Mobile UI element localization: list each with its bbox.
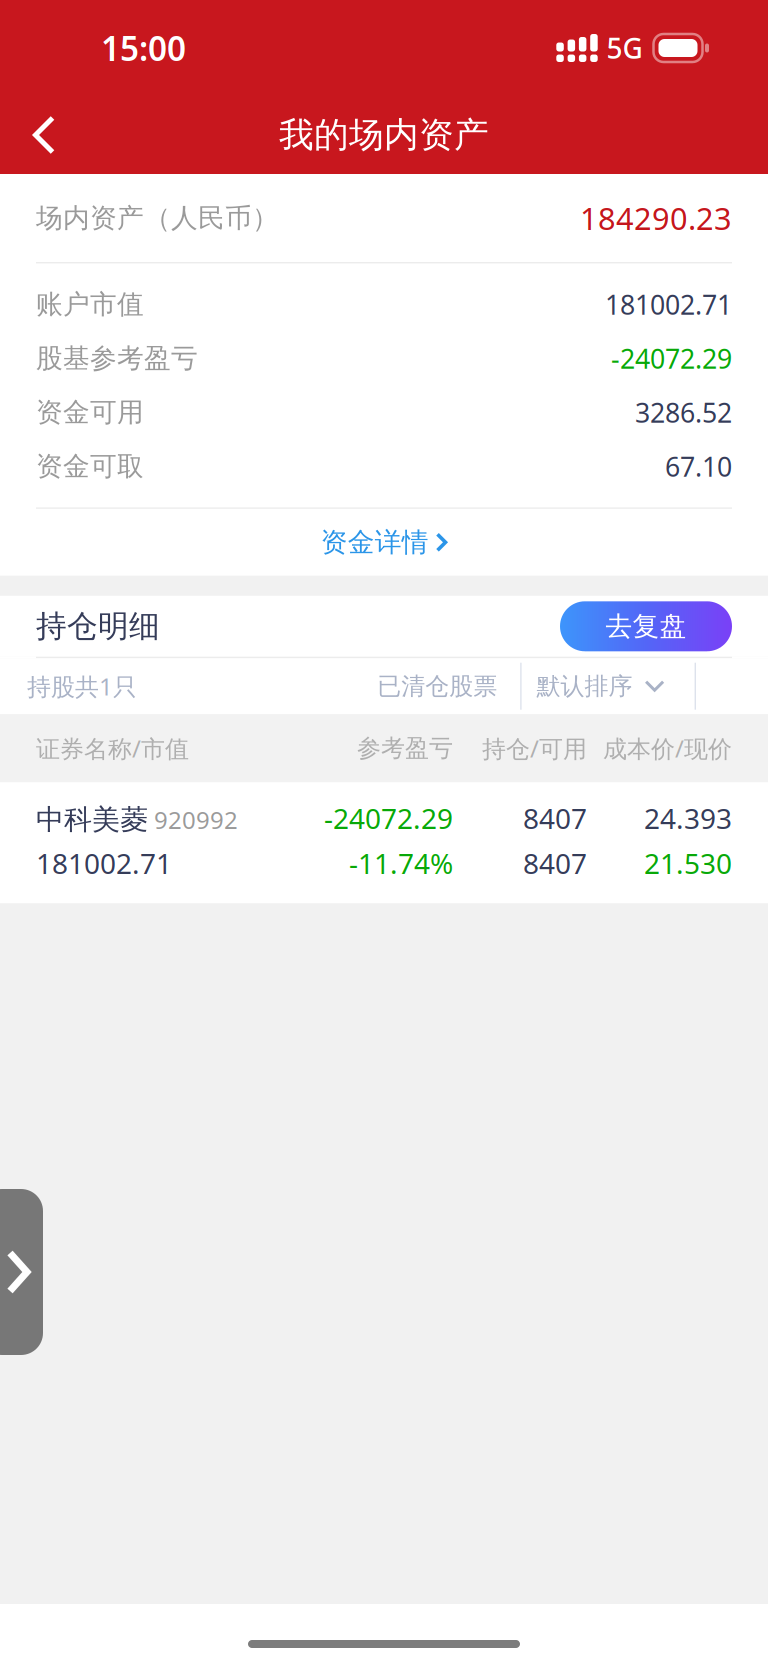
staticText: 股基参考盈亏 [36,342,198,375]
button[interactable]: 资金详情 [0,509,768,576]
staticText: 账户市值 [36,288,144,321]
staticText: 成本价/现价 [603,732,732,764]
button[interactable]: 默认排序 [522,658,695,714]
staticText: 5G [606,29,642,67]
staticText: -11.74% [349,845,453,882]
staticText: 资金可取 [36,450,144,483]
staticText: 持股共1只 [27,670,137,702]
staticText: 场内资产（人民币） [36,202,279,234]
staticText: 去复盘 [605,610,686,643]
staticText: 181002.71 [36,845,172,882]
staticText: 184290.23 [580,198,732,238]
button[interactable]: 去复盘 [560,601,732,651]
staticText: 8407 [523,799,587,837]
button[interactable]: Expand panel [0,1189,43,1355]
staticText: 持仓明细 [36,607,160,645]
staticText: 中科美菱 [36,802,148,837]
staticText: 已清仓股票 [377,671,497,701]
staticText: 24.393 [644,799,732,837]
staticText: 3286.52 [635,395,732,430]
staticText: 8407 [523,845,587,882]
staticText: 资金详情 [321,526,429,559]
staticText: -24072.29 [324,799,453,837]
staticText: 181002.71 [605,287,732,322]
staticText: 15:00 [101,26,186,70]
button[interactable]: 中科美菱 [0,782,768,903]
staticText: 证券名称/市值 [36,732,189,764]
staticText: 默认排序 [537,671,633,701]
staticText: 我的场内资产 [279,114,489,156]
button[interactable]: Back [0,96,88,174]
button[interactable]: 已清仓股票 [377,658,520,714]
staticText: 21.530 [644,845,732,882]
staticText: -24072.29 [611,341,732,376]
staticText: 920992 [148,804,238,836]
staticText: 67.10 [665,449,732,484]
staticText: 参考盈亏 [357,733,453,763]
staticText: 持仓/可用 [482,732,587,764]
staticText: 资金可用 [36,396,144,429]
